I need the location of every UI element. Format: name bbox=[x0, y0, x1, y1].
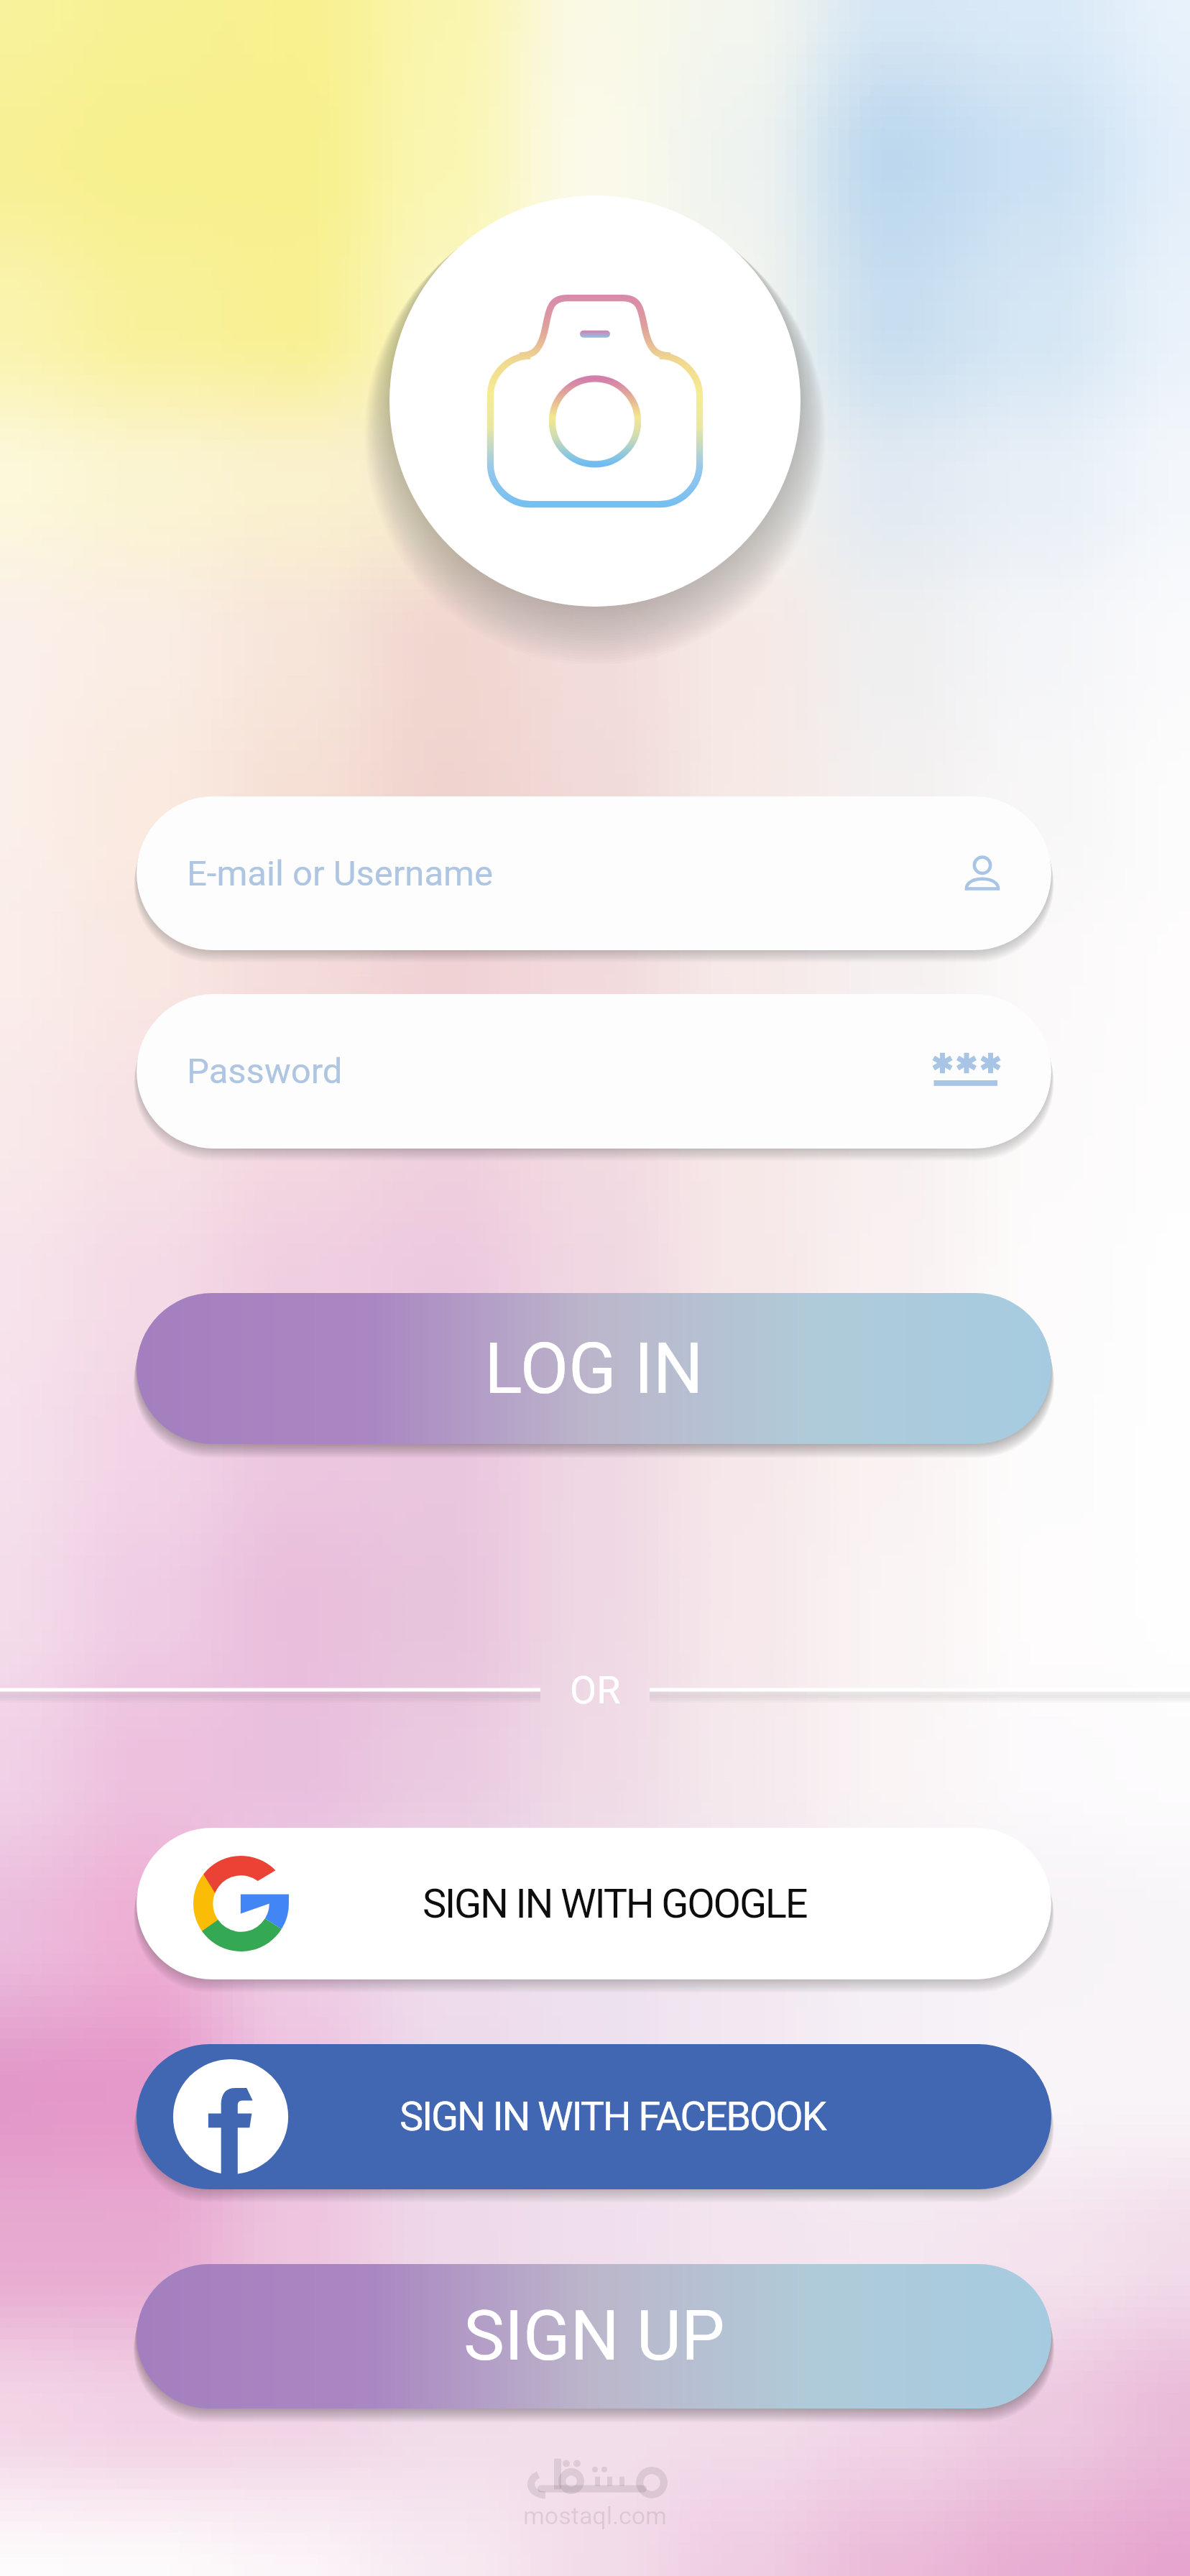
other: Facebook bbox=[167, 2053, 295, 2181]
other: Google bbox=[193, 1856, 289, 1951]
staticText: LOG IN bbox=[484, 1328, 704, 1410]
button[interactable]: Google bbox=[137, 1828, 1051, 1979]
button[interactable]: E-mail or Username bbox=[137, 796, 1051, 950]
staticText: OR bbox=[570, 1667, 621, 1713]
staticText: SIGN UP bbox=[463, 2296, 725, 2377]
other: Username bbox=[962, 853, 1002, 893]
button[interactable]: LOG IN bbox=[137, 1293, 1051, 1444]
staticText: SIGN IN WITH FACEBOOK bbox=[400, 2093, 826, 2140]
other: Show password bbox=[931, 1030, 1002, 1102]
button[interactable]: SIGN UP bbox=[137, 2264, 1051, 2409]
staticText: SIGN IN WITH GOOGLE bbox=[423, 1880, 807, 1928]
staticText: Password bbox=[187, 1051, 343, 1092]
staticText: E-mail or Username bbox=[187, 853, 494, 894]
staticText: mostaql.com bbox=[523, 2501, 667, 2530]
button[interactable]: Facebook bbox=[137, 2044, 1051, 2189]
button[interactable]: Password bbox=[137, 994, 1051, 1149]
